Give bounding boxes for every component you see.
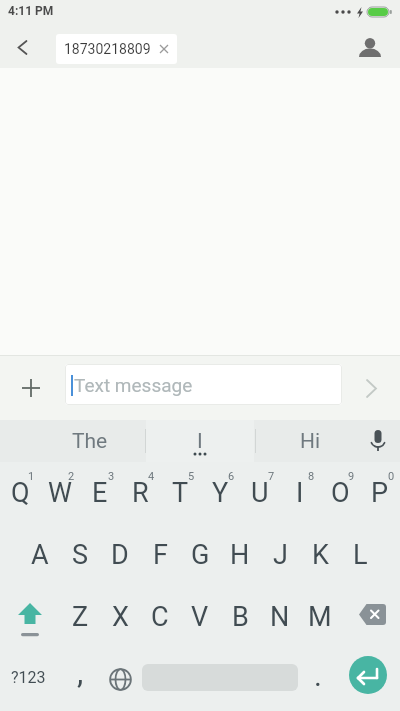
button[interactable]: W	[40, 462, 80, 524]
staticText: K	[312, 539, 329, 571]
staticText: C	[151, 601, 169, 633]
button[interactable]	[340, 586, 400, 649]
button[interactable]	[348, 26, 392, 68]
staticText: Y	[212, 477, 229, 509]
staticText: Hi	[300, 429, 321, 454]
staticText: 8	[308, 470, 315, 483]
staticText: 7	[268, 470, 275, 483]
staticText: 4	[148, 470, 155, 483]
button[interactable]: P	[360, 462, 400, 524]
staticText: ,	[77, 653, 84, 691]
button[interactable]: L	[340, 524, 380, 586]
button[interactable]: I	[280, 462, 320, 524]
button[interactable]: G	[180, 524, 220, 586]
staticText: O	[331, 477, 350, 509]
staticText: X	[112, 601, 129, 633]
button[interactable]	[104, 649, 136, 711]
button[interactable]: F	[140, 524, 180, 586]
button[interactable]: X	[100, 586, 140, 649]
button[interactable]: O	[320, 462, 360, 524]
staticText: H	[230, 539, 250, 571]
staticText: Z	[72, 601, 89, 633]
staticText: D	[111, 539, 129, 571]
button[interactable]: ?123	[0, 649, 56, 711]
staticText: W	[48, 477, 72, 509]
button[interactable]: A	[20, 524, 60, 586]
staticText: U	[251, 477, 269, 509]
staticText: 4:11 PM	[8, 4, 54, 18]
button[interactable]	[0, 26, 44, 68]
staticText: 2	[68, 470, 75, 483]
button[interactable]: S	[60, 524, 100, 586]
button[interactable]: C	[140, 586, 180, 649]
button[interactable]: T	[160, 462, 200, 524]
button[interactable]: U	[240, 462, 280, 524]
staticText: P	[371, 477, 389, 509]
button[interactable]: H	[220, 524, 260, 586]
button[interactable]: J	[260, 524, 300, 586]
staticText: J	[273, 539, 288, 571]
staticText: .	[314, 658, 322, 693]
button[interactable]	[356, 420, 400, 462]
button[interactable]: R	[120, 462, 160, 524]
button[interactable]: D	[100, 524, 140, 586]
staticText: S	[72, 539, 89, 571]
staticText: The	[72, 429, 108, 454]
button[interactable]: Z	[60, 586, 100, 649]
button[interactable]: 18730218809	[56, 34, 177, 64]
button[interactable]: M	[300, 586, 340, 649]
button[interactable]: K	[300, 524, 340, 586]
button[interactable]: B	[220, 586, 260, 649]
button[interactable]: The	[50, 420, 130, 462]
staticText: 6	[228, 470, 235, 483]
button[interactable]: I	[160, 420, 240, 462]
staticText: ?123	[11, 668, 46, 687]
staticText: Q	[11, 477, 30, 509]
button[interactable]: Y	[200, 462, 240, 524]
staticText: 18730218809	[64, 41, 151, 57]
staticText: M	[308, 601, 332, 633]
button[interactable]	[349, 656, 387, 694]
staticText: R	[132, 477, 149, 509]
staticText: 3	[108, 470, 115, 483]
staticText: L	[353, 539, 368, 571]
staticText: I	[296, 477, 304, 509]
button[interactable]: Hi	[270, 420, 350, 462]
staticText: V	[191, 601, 209, 633]
button[interactable]: ,	[56, 649, 104, 711]
staticText: E	[92, 477, 108, 509]
button[interactable]: Q	[0, 462, 40, 524]
staticText: N	[270, 601, 290, 633]
staticText: 9	[348, 470, 355, 483]
staticText: G	[191, 539, 210, 571]
staticText: 0	[388, 470, 395, 483]
button[interactable]: .	[302, 649, 334, 711]
staticText: B	[232, 601, 249, 633]
button[interactable]	[0, 356, 65, 420]
button[interactable]: E	[80, 462, 120, 524]
staticText: I	[197, 429, 203, 454]
staticText: T	[172, 477, 189, 509]
staticText: A	[31, 539, 49, 571]
button[interactable]	[0, 586, 60, 649]
button[interactable]: Text message	[65, 364, 342, 405]
button[interactable]	[342, 356, 400, 420]
staticText: 1	[28, 470, 35, 483]
staticText: 5	[188, 470, 195, 483]
button[interactable]: N	[260, 586, 300, 649]
staticText: Text message	[74, 374, 193, 396]
button[interactable]: V	[180, 586, 220, 649]
staticText: F	[153, 539, 168, 571]
